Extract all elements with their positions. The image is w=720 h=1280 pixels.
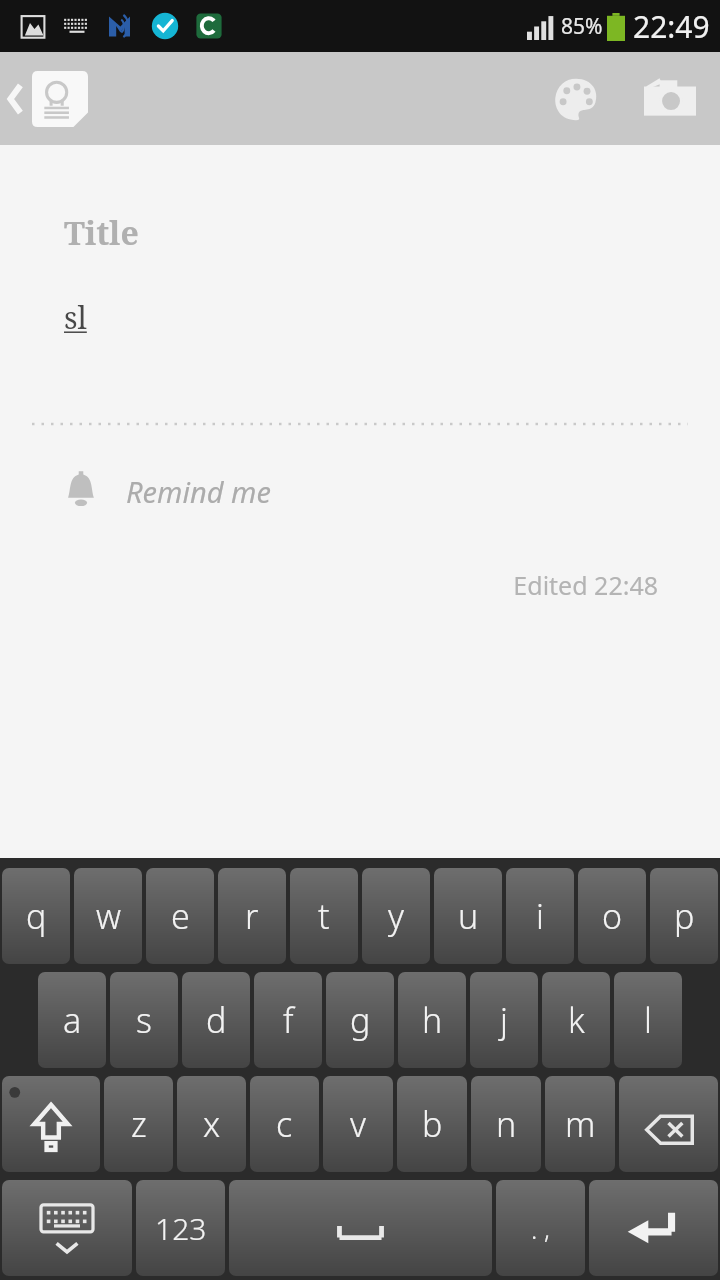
staticText: o xyxy=(602,893,623,939)
staticText: q xyxy=(26,893,47,939)
button[interactable]: m xyxy=(545,1076,615,1172)
staticText: sl xyxy=(64,297,87,338)
staticText: Title xyxy=(64,211,139,255)
button[interactable]: Space xyxy=(229,1180,492,1276)
button[interactable]: f xyxy=(254,972,322,1068)
button[interactable]: g xyxy=(326,972,394,1068)
staticText: c xyxy=(276,1101,293,1147)
button[interactable]: b xyxy=(397,1076,467,1172)
staticText: f xyxy=(283,997,294,1043)
staticText: g xyxy=(350,997,371,1043)
button[interactable]: Add image xyxy=(634,63,706,135)
staticText: b xyxy=(422,1101,443,1147)
button[interactable]: r xyxy=(218,868,286,964)
button[interactable]: a xyxy=(38,972,106,1068)
button[interactable]: e xyxy=(146,868,214,964)
button[interactable]: c xyxy=(250,1076,319,1172)
button[interactable]: x xyxy=(177,1076,246,1172)
staticText: h xyxy=(422,997,443,1043)
button[interactable]: s xyxy=(110,972,178,1068)
staticText: t xyxy=(318,893,330,939)
button[interactable]: y xyxy=(362,868,430,964)
staticText: i xyxy=(536,893,544,939)
staticText: r xyxy=(245,893,259,939)
staticText: j xyxy=(500,997,508,1043)
button[interactable]: 123 xyxy=(136,1180,225,1276)
staticText: v xyxy=(350,1101,366,1147)
staticText: x xyxy=(203,1101,221,1147)
button[interactable]: sl xyxy=(0,297,720,338)
button[interactable]: j xyxy=(470,972,538,1068)
button[interactable]: k xyxy=(542,972,610,1068)
button[interactable]: Title xyxy=(0,207,720,259)
staticText: z xyxy=(131,1101,147,1147)
button[interactable]: t xyxy=(290,868,358,964)
staticText: y xyxy=(388,893,404,939)
staticText: 123 xyxy=(155,1208,207,1249)
staticText: d xyxy=(206,997,227,1043)
button[interactable]: q xyxy=(2,868,70,964)
button[interactable]: Remind me xyxy=(0,460,720,522)
staticText: w xyxy=(96,893,121,939)
staticText: . , xyxy=(531,1211,550,1246)
staticText: s xyxy=(136,997,152,1043)
button[interactable]: i xyxy=(506,868,574,964)
staticText: m xyxy=(565,1101,596,1147)
button[interactable]: d xyxy=(182,972,250,1068)
button[interactable]: . , xyxy=(496,1180,585,1276)
button[interactable]: h xyxy=(398,972,466,1068)
staticText: 85% xyxy=(561,12,603,41)
staticText: n xyxy=(496,1101,517,1147)
button[interactable]: Enter xyxy=(589,1180,718,1276)
button[interactable]: w xyxy=(74,868,142,964)
button[interactable]: Change color xyxy=(540,63,612,135)
button[interactable]: Shift xyxy=(2,1076,100,1172)
staticText: l xyxy=(644,997,652,1043)
button[interactable]: n xyxy=(471,1076,541,1172)
staticText: Remind me xyxy=(126,472,271,511)
button[interactable]: Back to Keep xyxy=(0,63,98,135)
staticText: a xyxy=(63,997,82,1043)
staticText: p xyxy=(674,893,695,939)
staticText: k xyxy=(568,997,585,1043)
button[interactable]: o xyxy=(578,868,646,964)
button[interactable]: Hide keyboard xyxy=(2,1180,132,1276)
button[interactable]: Delete xyxy=(619,1076,718,1172)
staticText: 22:49 xyxy=(633,6,710,47)
button[interactable]: l xyxy=(614,972,682,1068)
button[interactable]: u xyxy=(434,868,502,964)
button[interactable]: v xyxy=(323,1076,393,1172)
staticText: e xyxy=(171,893,190,939)
button[interactable]: z xyxy=(104,1076,173,1172)
staticText: Edited 22:48 xyxy=(0,568,658,602)
button[interactable]: p xyxy=(650,868,718,964)
staticText: u xyxy=(458,893,479,939)
